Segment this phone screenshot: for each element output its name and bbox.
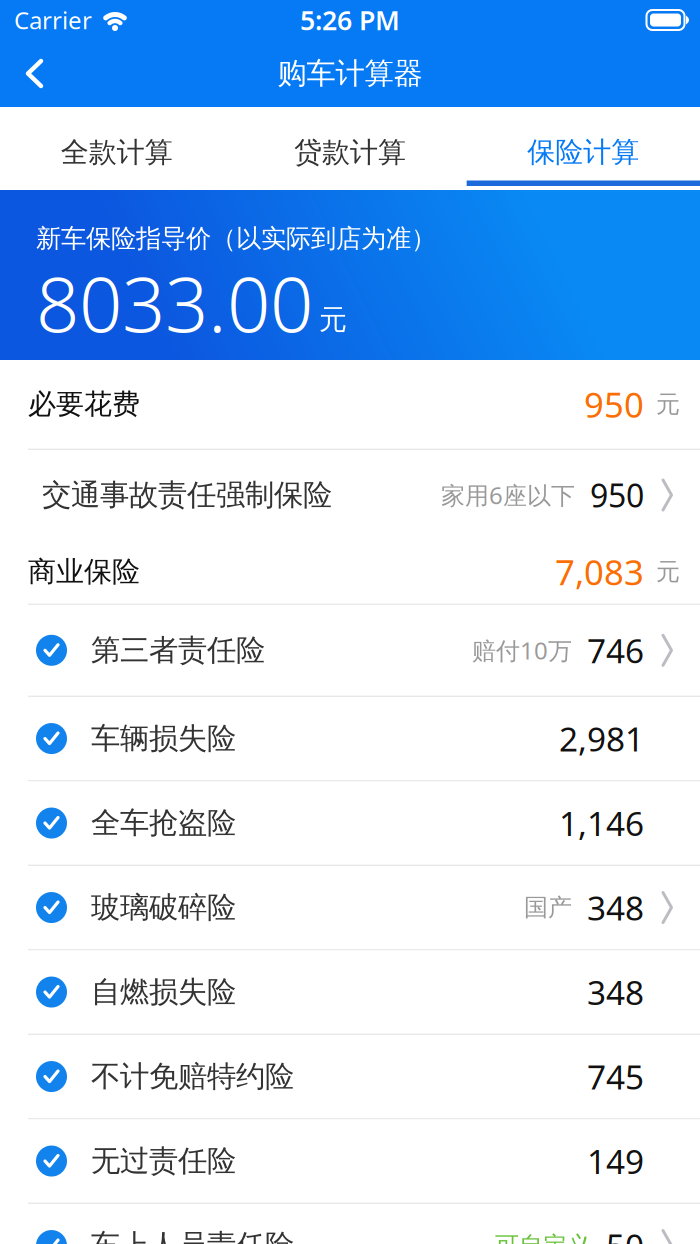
staticText: 149 [587, 1139, 644, 1183]
staticText: 950 [584, 381, 644, 427]
staticText: 玻璃破碎险 [91, 889, 236, 925]
staticText: 自燃损失险 [91, 974, 236, 1010]
button[interactable]: 全款计算 [0, 107, 233, 190]
staticText: Carrier [14, 4, 92, 36]
staticText: 第三者责任险 [91, 632, 265, 668]
button[interactable]: Back [0, 43, 44, 104]
button[interactable]: 不计免赔特约险 [0, 1035, 700, 1119]
staticText: 新车保险指导价（以实际到店为准） [36, 223, 436, 254]
staticText: 全车抢盗险 [91, 805, 236, 841]
staticText: 保险计算 [527, 135, 639, 169]
staticText: 元 [656, 557, 680, 587]
button[interactable]: 交通事故责任强制保险 [0, 450, 700, 540]
button[interactable]: 玻璃破碎险 [0, 866, 700, 950]
staticText: 348 [587, 970, 644, 1014]
button[interactable]: 全车抢盗险 [0, 781, 700, 866]
staticText: 可自定义 [495, 1231, 591, 1244]
button[interactable]: 自燃损失险 [0, 950, 700, 1035]
staticText: 车上人员责任险 [91, 1227, 294, 1244]
button[interactable]: 贷款计算 [233, 107, 467, 190]
staticText: 家用6座以下 [441, 479, 575, 511]
button[interactable]: 无过责任险 [0, 1119, 700, 1204]
staticText: 2,981 [559, 716, 644, 761]
staticText: 购车计算器 [277, 55, 422, 91]
staticText: 赔付10万 [472, 634, 572, 666]
staticText: 不计免赔特约险 [91, 1058, 294, 1094]
staticText: 元 [319, 302, 347, 337]
button[interactable]: 车辆损失险 [0, 697, 700, 781]
staticText: 950 [590, 474, 644, 516]
staticText: 8033.00 [36, 252, 313, 353]
staticText: 车辆损失险 [91, 720, 236, 756]
staticText: 贷款计算 [294, 135, 406, 170]
button[interactable]: 车上人员责任险 [0, 1204, 700, 1244]
staticText: 50 [606, 1223, 644, 1244]
staticText: 无过责任险 [91, 1143, 236, 1179]
staticText: 全款计算 [61, 135, 173, 170]
staticText: 1,146 [559, 801, 644, 845]
staticText: 5:26 PM [300, 2, 400, 38]
staticText: 7,083 [555, 549, 644, 595]
staticText: 交通事故责任强制保险 [42, 477, 332, 513]
staticText: 必要花费 [28, 387, 140, 421]
staticText: 国产 [524, 893, 572, 922]
button[interactable]: 第三者责任险 [0, 605, 700, 697]
staticText: 商业保险 [28, 555, 140, 589]
button[interactable]: 保险计算 [467, 107, 700, 190]
staticText: 元 [656, 390, 680, 419]
staticText: 746 [587, 628, 644, 672]
staticText: 745 [587, 1054, 644, 1099]
staticText: 348 [587, 885, 644, 930]
